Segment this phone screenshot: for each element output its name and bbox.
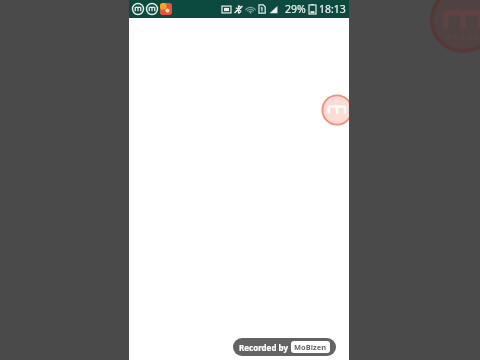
staticText: Recorded by [239, 342, 288, 353]
staticText: 18:13 [319, 2, 346, 16]
button[interactable] [129, 18, 349, 360]
staticText: MoBizen [294, 342, 327, 352]
staticText: 29% [285, 2, 306, 16]
button[interactable]: Recorded by [239, 341, 330, 353]
